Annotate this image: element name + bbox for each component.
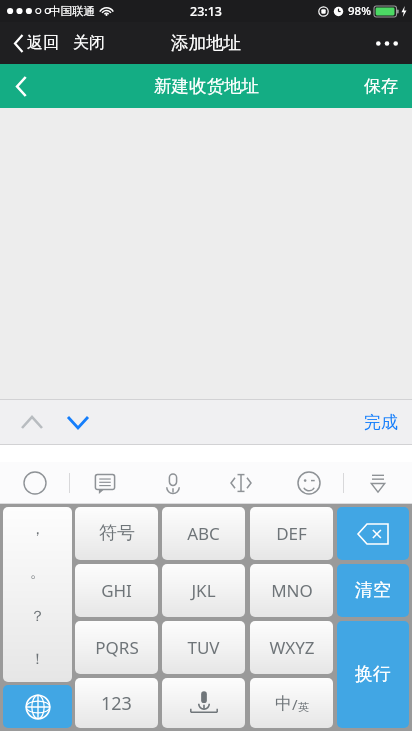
staticText: 完成 — [364, 412, 398, 433]
button[interactable]: ABC — [162, 507, 245, 560]
button[interactable]: Voice input — [139, 462, 207, 504]
staticText: 换行 — [355, 663, 391, 686]
staticText: 符号 — [99, 522, 135, 545]
button[interactable]: Hide keyboard — [344, 462, 412, 504]
button[interactable]: Delete — [337, 507, 409, 560]
staticText: GHI — [101, 579, 132, 602]
button[interactable]: Messages — [70, 462, 139, 504]
button[interactable]: More options — [362, 31, 412, 56]
staticText: TUV — [187, 636, 220, 659]
staticText: 返回 — [27, 33, 59, 53]
button[interactable]: Voice input — [162, 678, 245, 728]
button[interactable]: ， — [3, 507, 72, 682]
staticText: 保存 — [364, 76, 398, 97]
button[interactable]: 中 — [250, 678, 333, 728]
button[interactable]: Input method — [0, 462, 69, 504]
button[interactable]: Emoji — [275, 462, 343, 504]
button[interactable]: 保存 — [350, 66, 412, 107]
button[interactable]: Text cursor — [207, 462, 275, 504]
staticText: 新建收货地址 — [154, 75, 259, 97]
button[interactable]: 返回 — [10, 27, 63, 59]
staticText: JKL — [191, 579, 216, 602]
button[interactable]: TUV — [162, 621, 245, 674]
button[interactable]: 完成 — [350, 402, 412, 443]
staticText: ， — [30, 520, 45, 539]
button[interactable]: 换行 — [337, 621, 409, 728]
staticText: 中 — [275, 693, 292, 714]
button[interactable]: WXYZ — [250, 621, 333, 674]
staticText: 添加地址 — [171, 32, 241, 54]
button[interactable]: Previous field — [12, 407, 52, 438]
staticText: WXYZ — [269, 636, 315, 659]
staticText: 英 — [298, 700, 309, 714]
staticText: ABC — [187, 522, 220, 545]
staticText: 关闭 — [73, 33, 105, 53]
staticText: 23:13 — [190, 3, 223, 20]
staticText: 中国联通 — [49, 4, 95, 18]
button[interactable]: JKL — [162, 564, 245, 617]
staticText: PQRS — [95, 636, 139, 659]
button[interactable]: Switch language — [3, 685, 72, 728]
button[interactable]: 123 — [75, 678, 158, 728]
staticText: 98% — [348, 3, 371, 19]
button[interactable]: PQRS — [75, 621, 158, 674]
staticText: ？ — [30, 607, 45, 626]
button[interactable]: DEF — [250, 507, 333, 560]
button[interactable]: 清空 — [337, 564, 409, 617]
button[interactable]: Back — [0, 67, 43, 106]
button[interactable]: MNO — [250, 564, 333, 617]
staticText: 清空 — [355, 579, 391, 602]
staticText: DEF — [276, 522, 307, 545]
button[interactable]: GHI — [75, 564, 158, 617]
staticText: 123 — [101, 691, 132, 716]
button[interactable]: Next field — [58, 407, 98, 438]
staticText: 。 — [30, 563, 45, 582]
button[interactable]: 关闭 — [69, 27, 109, 59]
button[interactable]: 符号 — [75, 507, 158, 560]
staticText: ！ — [30, 650, 45, 669]
staticText: MNO — [271, 579, 313, 602]
staticText: / — [292, 694, 298, 714]
